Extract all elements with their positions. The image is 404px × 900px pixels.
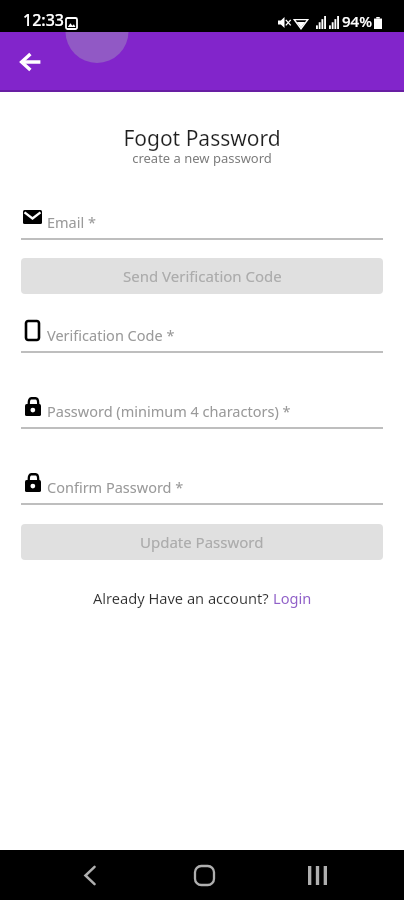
staticText: Login: [273, 588, 312, 608]
staticText: Verification Code *: [47, 325, 175, 345]
button[interactable]: Verification Code *: [21, 318, 383, 354]
staticText: create a new password: [0, 149, 404, 167]
button[interactable]: Back: [10, 41, 52, 83]
button[interactable]: Home: [180, 851, 228, 899]
staticText: Fogot Password: [0, 124, 404, 153]
staticText: Confirm Password *: [47, 477, 184, 497]
button[interactable]: Send Verification Code: [21, 258, 383, 294]
staticText: Send Verification Code: [123, 266, 282, 286]
button[interactable]: Back: [66, 851, 114, 899]
button[interactable]: Recent apps: [293, 851, 341, 899]
staticText: Already Have an account?: [93, 588, 273, 608]
staticText: Email *: [47, 212, 96, 232]
button[interactable]: Update Password: [21, 524, 383, 560]
staticText: 94%: [342, 11, 372, 31]
button[interactable]: Password (minimum 4 charactors) *: [21, 394, 383, 430]
button[interactable]: Email *: [21, 205, 383, 241]
button[interactable]: Confirm Password *: [21, 470, 383, 506]
staticText: Update Password: [140, 532, 264, 552]
staticText: Password (minimum 4 charactors) *: [47, 401, 291, 421]
button[interactable]: Login: [273, 588, 312, 608]
staticText: 12:33: [23, 9, 64, 31]
